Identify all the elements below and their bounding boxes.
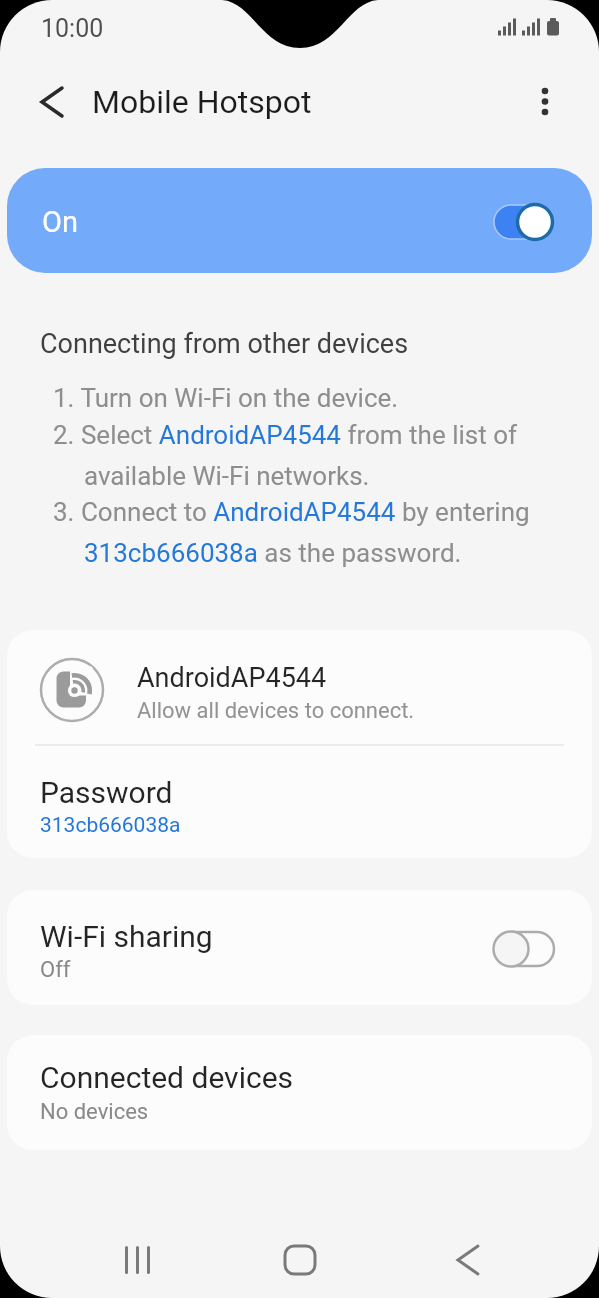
- button[interactable]: [443, 1235, 493, 1285]
- button[interactable]: [275, 1235, 325, 1285]
- staticText: 313cb666038a: [40, 813, 181, 838]
- button[interactable]: [110, 1235, 160, 1285]
- staticText: 10:00: [41, 14, 104, 43]
- button[interactable]: [521, 78, 569, 126]
- button[interactable]: Password: [7, 746, 592, 858]
- staticText: Off: [40, 957, 71, 983]
- staticText: On: [42, 205, 78, 239]
- staticText: available Wi-Fi networks.: [84, 461, 370, 491]
- staticText: 3. Connect to AndroidAP4544 by entering: [53, 497, 530, 527]
- staticText: Connecting from other devices: [40, 328, 409, 360]
- staticText: Allow all devices to connect.: [137, 698, 415, 724]
- staticText: 1. Turn on Wi-Fi on the device.: [53, 383, 399, 413]
- staticText: Connected devices: [40, 1060, 294, 1095]
- staticText: 313cb666038a as the password.: [84, 538, 462, 568]
- button[interactable]: Wi-Fi sharing: [7, 890, 592, 1005]
- staticText: 2. Select AndroidAP4544 from the list of: [53, 420, 518, 450]
- staticText: Wi-Fi sharing: [40, 919, 213, 954]
- button[interactable]: Connected devices: [7, 1035, 592, 1150]
- staticText: Password: [40, 775, 173, 810]
- button[interactable]: AndroidAP4544: [7, 630, 592, 746]
- button[interactable]: On: [7, 168, 592, 273]
- staticText: AndroidAP4544: [137, 662, 327, 694]
- button[interactable]: [28, 78, 76, 126]
- staticText: No devices: [40, 1099, 149, 1125]
- staticText: Mobile Hotspot: [92, 83, 312, 121]
